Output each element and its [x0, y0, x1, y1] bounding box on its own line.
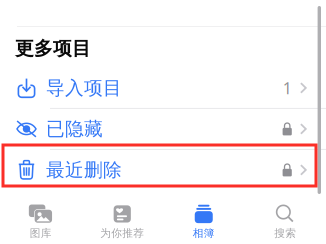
- button[interactable]: 最近删除: [0, 150, 326, 190]
- button[interactable]: 图库: [0, 201, 81, 243]
- button[interactable]: 已隐藏: [0, 109, 326, 149]
- button[interactable]: 导入项目: [0, 68, 326, 108]
- button[interactable]: 相簿: [163, 201, 244, 243]
- button[interactable]: 为你推荐: [81, 201, 163, 243]
- staticText: 更多项目: [15, 37, 91, 60]
- button[interactable]: 搜索: [244, 201, 326, 243]
- staticText: 最近删除: [46, 158, 122, 181]
- staticText: 导入项目: [46, 76, 122, 99]
- staticText: 相簿: [193, 227, 215, 240]
- staticText: 图库: [30, 227, 52, 240]
- staticText: 1: [283, 77, 292, 98]
- staticText: 搜索: [274, 227, 296, 240]
- staticText: 已隐藏: [46, 117, 103, 140]
- staticText: 为你推荐: [100, 227, 144, 240]
